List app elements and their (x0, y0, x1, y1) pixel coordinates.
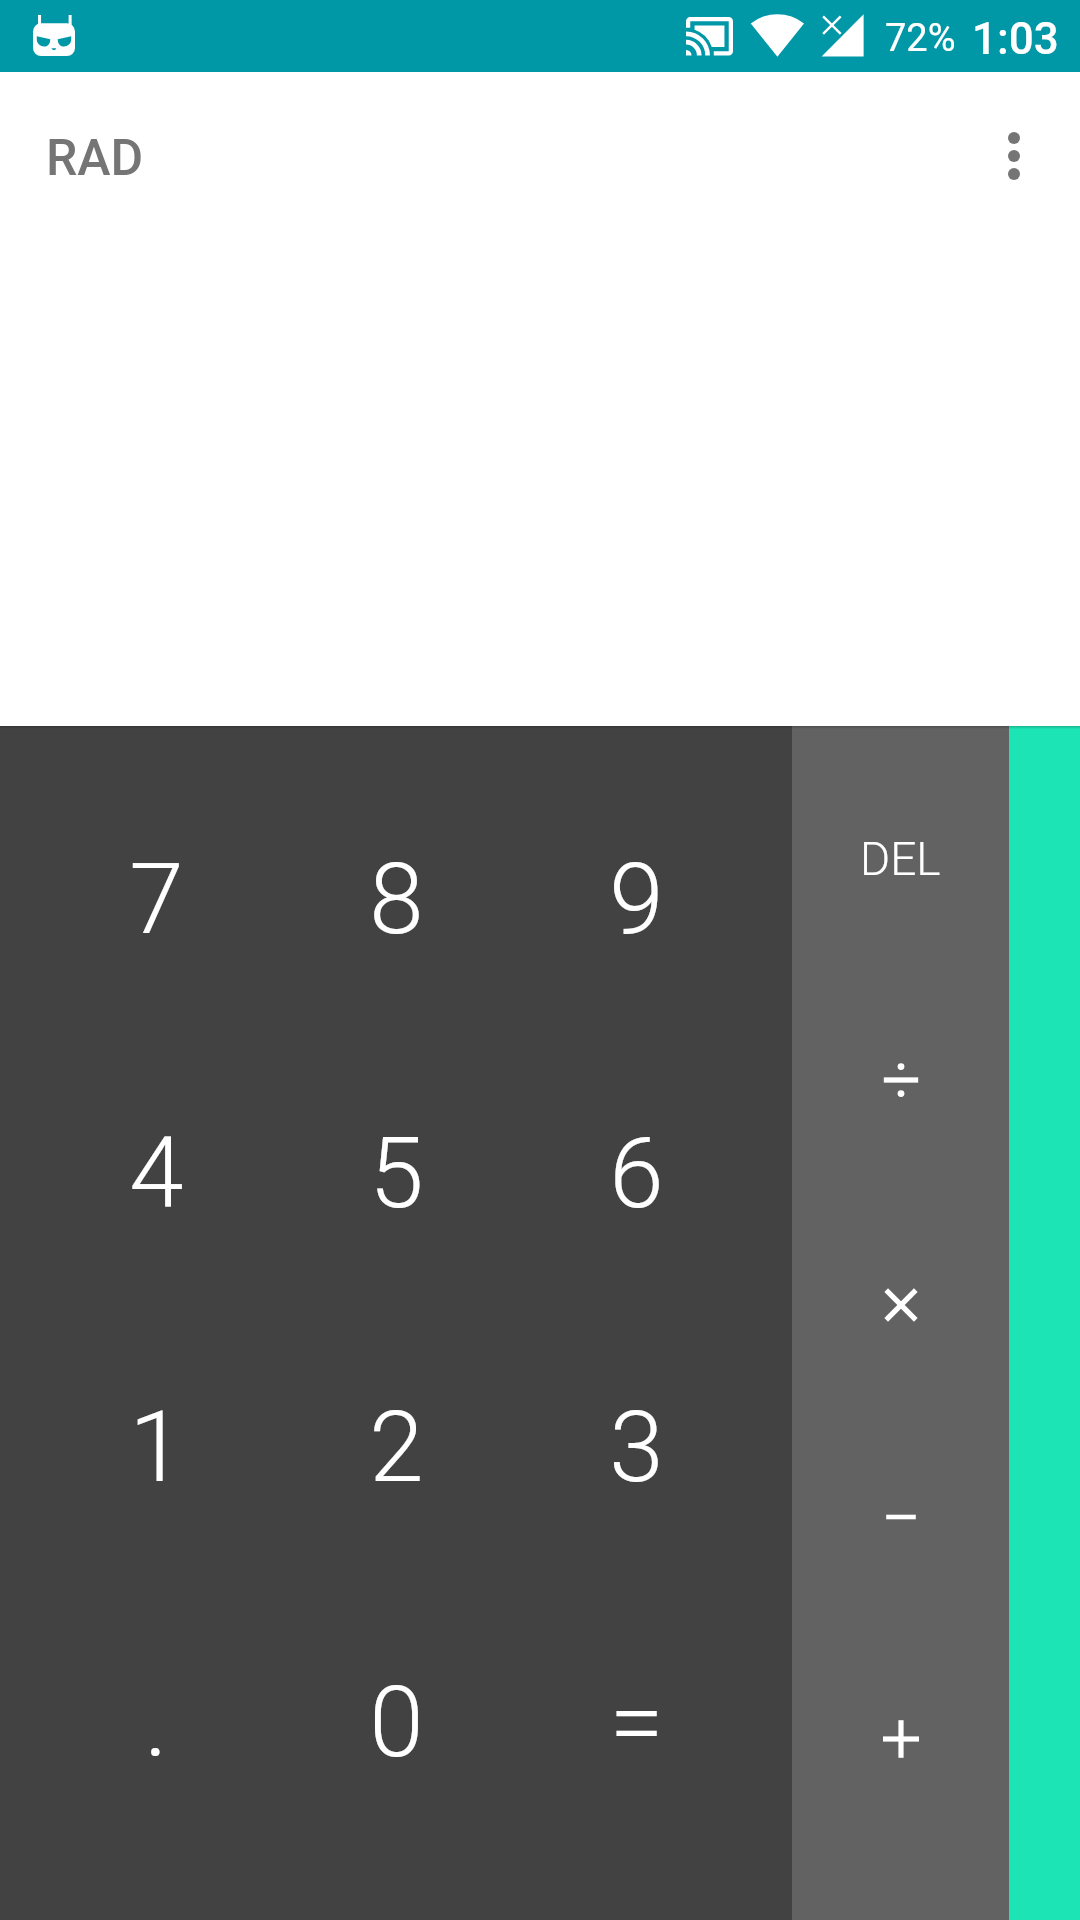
staticText: = (609, 1665, 664, 1780)
button[interactable]: . (36, 1585, 276, 1859)
staticText: DEL (860, 832, 941, 886)
staticText: RAD (46, 129, 144, 188)
button[interactable]: RAD (46, 129, 144, 188)
staticText: 0 (369, 1665, 424, 1780)
staticText: 9 (609, 842, 664, 957)
button[interactable]: 4 (36, 1036, 276, 1310)
button[interactable]: Divide (792, 981, 1009, 1200)
staticText: . (144, 1665, 168, 1780)
button[interactable]: 7 (36, 762, 276, 1036)
button[interactable]: 2 (276, 1310, 516, 1584)
button[interactable]: 8 (276, 762, 516, 1036)
button[interactable]: More options (968, 110, 1060, 202)
button[interactable]: 0 (276, 1585, 516, 1859)
button[interactable]: Add (792, 1640, 1009, 1859)
staticText: 2 (369, 1390, 424, 1505)
button[interactable]: DEL (792, 762, 1009, 981)
button[interactable]: = (516, 1585, 756, 1859)
button[interactable]: Multiply (792, 1201, 1009, 1420)
button[interactable]: Subtract (792, 1420, 1009, 1639)
staticText: 5 (369, 1116, 424, 1231)
button[interactable]: 3 (516, 1310, 756, 1584)
staticText: 72% (885, 16, 956, 61)
button[interactable]: 6 (516, 1036, 756, 1310)
staticText: 8 (369, 842, 424, 957)
staticText: 6 (609, 1116, 664, 1231)
staticText: 4 (129, 1116, 184, 1231)
button[interactable]: 1 (36, 1310, 276, 1584)
staticText: 3 (609, 1390, 664, 1505)
staticText: 1:03 (972, 13, 1059, 65)
staticText: 1 (129, 1390, 184, 1505)
button[interactable]: 9 (516, 762, 756, 1036)
staticText: 7 (129, 842, 184, 957)
button[interactable]: 5 (276, 1036, 516, 1310)
